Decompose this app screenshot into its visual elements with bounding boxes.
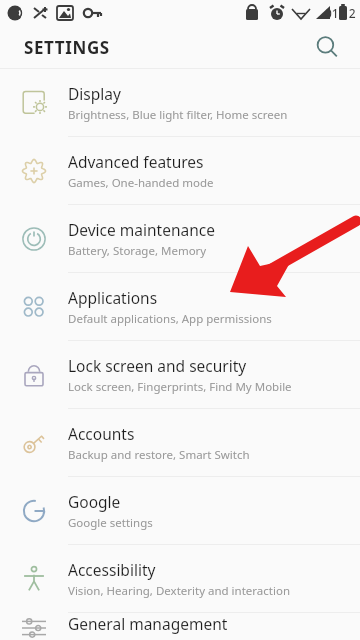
button[interactable]: Applications (0, 273, 360, 340)
staticText: Default applications, App permissions (68, 311, 272, 327)
staticText: Applications (68, 287, 158, 308)
staticText: 01:12 (325, 5, 356, 21)
button[interactable]: Device maintenance (0, 205, 360, 272)
button[interactable]: Accessibility (0, 545, 360, 612)
staticText: Accessibility (68, 559, 156, 580)
staticText: Display (68, 83, 121, 104)
staticText: SETTINGS (24, 36, 110, 59)
staticText: Google (68, 491, 121, 512)
staticText: Backup and restore, Smart Switch (68, 447, 250, 463)
staticText: Brightness, Blue light filter, Home scre… (68, 107, 288, 123)
staticText: Google settings (68, 515, 153, 531)
button[interactable]: Lock screen and security (0, 341, 360, 408)
button[interactable]: General management (0, 613, 360, 640)
button[interactable]: Display (0, 69, 360, 136)
staticText: Games, One-handed mode (68, 175, 214, 191)
staticText: Lock screen and security (68, 355, 247, 376)
staticText: Battery, Storage, Memory (68, 243, 207, 259)
button[interactable]: Advanced features (0, 137, 360, 204)
button[interactable]: Accounts (0, 409, 360, 476)
staticText: Vision, Hearing, Dexterity and interacti… (68, 583, 291, 599)
staticText: Advanced features (68, 151, 204, 172)
staticText: Lock screen, Fingerprints, Find My Mobil… (68, 379, 292, 395)
button[interactable]: Google (0, 477, 360, 544)
staticText: General management (68, 613, 228, 634)
button[interactable]: Search (306, 26, 348, 68)
staticText: Device maintenance (68, 219, 215, 240)
staticText: Accounts (68, 423, 135, 444)
